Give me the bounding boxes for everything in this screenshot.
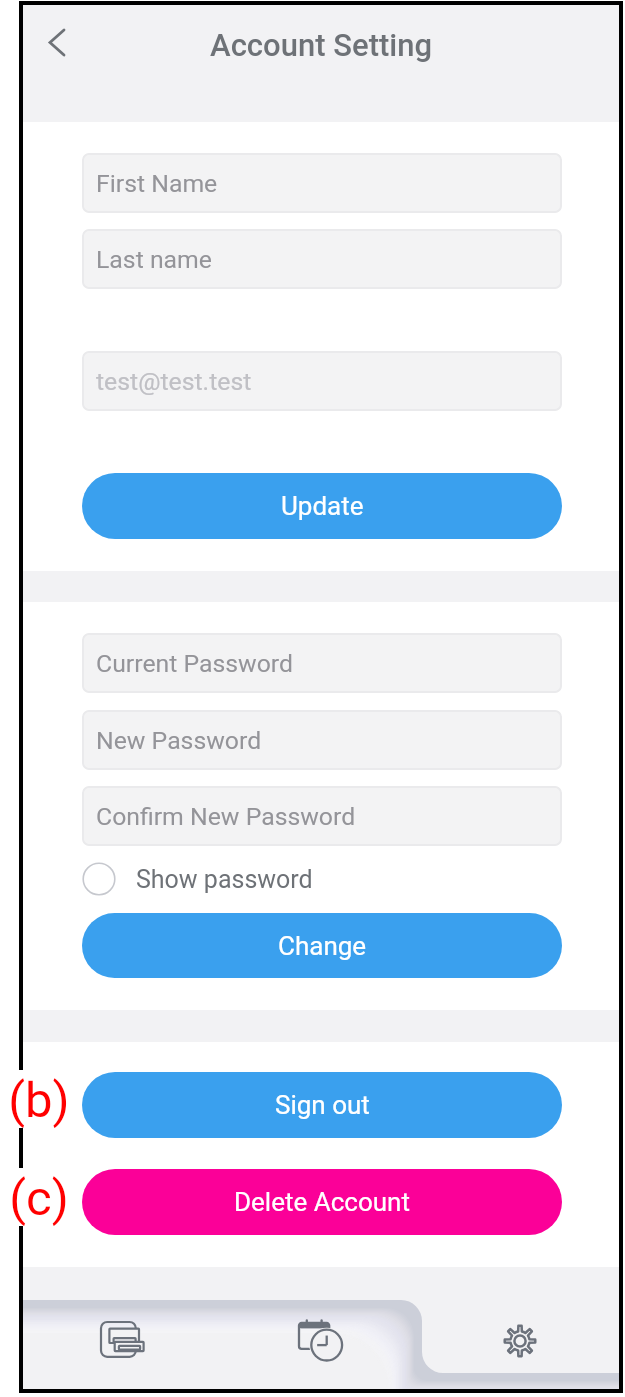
button[interactable]: Last name (82, 229, 562, 289)
button[interactable]: Settings (420, 1300, 619, 1390)
staticText: Confirm New Password (96, 802, 356, 831)
button[interactable]: test@test.test (82, 351, 562, 411)
button[interactable]: Back (24, 10, 88, 74)
staticText: Account Setting (210, 27, 433, 63)
staticText: Update (281, 491, 364, 521)
staticText: Delete Account (234, 1187, 410, 1217)
staticText: Show password (136, 865, 313, 894)
staticText: Change (278, 931, 367, 961)
button[interactable]: Update (82, 473, 562, 539)
staticText: New Password (96, 726, 262, 755)
button[interactable]: Delete Account (82, 1169, 562, 1235)
staticText: (c) (9, 1170, 69, 1227)
staticText: Last name (96, 245, 212, 274)
button[interactable]: Current Password (82, 633, 562, 693)
button[interactable]: Change (82, 913, 562, 978)
button[interactable]: New Password (82, 710, 562, 770)
button[interactable]: Confirm New Password (82, 786, 562, 846)
staticText: (b) (8, 1072, 70, 1129)
button[interactable]: Dashboard (23, 1300, 221, 1390)
button[interactable]: Schedule (221, 1300, 420, 1390)
button[interactable]: Sign out (82, 1072, 562, 1138)
staticText: Sign out (275, 1090, 370, 1120)
staticText: test@test.test (96, 367, 252, 396)
button[interactable]: First Name (82, 153, 562, 213)
staticText: First Name (96, 169, 218, 198)
button[interactable]: Show password (82, 856, 412, 902)
staticText: Current Password (96, 649, 294, 678)
